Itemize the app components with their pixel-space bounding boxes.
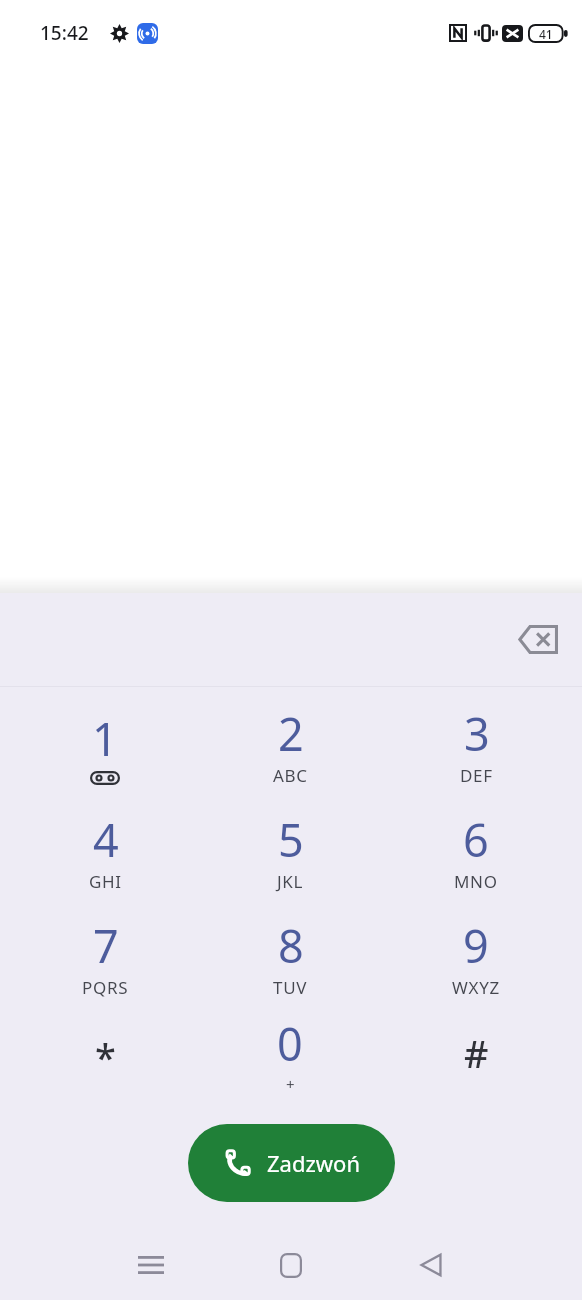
staticText: # bbox=[464, 1027, 489, 1079]
staticText: 1 bbox=[92, 708, 118, 769]
button[interactable]: Backspace bbox=[505, 593, 571, 686]
button[interactable]: Back bbox=[396, 1240, 466, 1290]
button[interactable]: # bbox=[401, 1003, 551, 1103]
staticText: JKL bbox=[277, 870, 304, 893]
staticText: 0 bbox=[277, 1013, 303, 1074]
staticText: 9 bbox=[463, 915, 489, 976]
staticText: 7 bbox=[93, 915, 119, 976]
button[interactable]: 5 bbox=[215, 801, 365, 901]
staticText: 8 bbox=[278, 915, 304, 976]
staticText: 4 bbox=[93, 809, 119, 870]
staticText: 2 bbox=[278, 703, 304, 764]
button[interactable]: 7 bbox=[30, 907, 180, 1007]
staticText: DEF bbox=[460, 764, 493, 787]
button[interactable]: Recent apps bbox=[116, 1240, 186, 1290]
button[interactable]: 6 bbox=[401, 801, 551, 901]
staticText: TUV bbox=[273, 976, 308, 999]
staticText: 41 bbox=[539, 26, 553, 42]
staticText: Zadzwoń bbox=[267, 1148, 360, 1178]
staticText: + bbox=[286, 1074, 295, 1094]
button[interactable]: 2 bbox=[215, 695, 365, 795]
staticText: * bbox=[95, 1031, 116, 1083]
staticText: 6 bbox=[463, 809, 489, 870]
button[interactable]: 1 bbox=[30, 695, 180, 795]
button[interactable]: * bbox=[30, 1003, 180, 1103]
button[interactable]: Home bbox=[256, 1240, 326, 1290]
button[interactable]: 0 bbox=[215, 1003, 365, 1103]
button[interactable]: Zadzwoń bbox=[188, 1124, 395, 1202]
staticText: WXYZ bbox=[452, 976, 500, 999]
button[interactable]: 3 bbox=[401, 695, 551, 795]
staticText: ABC bbox=[273, 764, 308, 787]
button[interactable]: 8 bbox=[215, 907, 365, 1007]
button[interactable]: 9 bbox=[401, 907, 551, 1007]
staticText: 15:42 bbox=[40, 20, 89, 46]
staticText: PQRS bbox=[82, 976, 129, 999]
staticText: GHI bbox=[89, 870, 122, 893]
staticText: 3 bbox=[464, 703, 490, 764]
staticText: MNO bbox=[454, 870, 498, 893]
staticText: 5 bbox=[278, 809, 304, 870]
button[interactable]: 4 bbox=[30, 801, 180, 901]
